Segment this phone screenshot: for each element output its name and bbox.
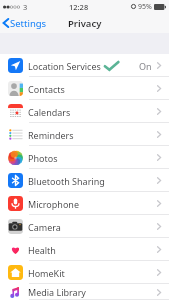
staticText: Reminders bbox=[28, 129, 74, 141]
button[interactable]: Calendars bbox=[0, 100, 169, 123]
staticText: On bbox=[139, 60, 152, 72]
staticText: Media Library bbox=[28, 286, 86, 298]
button[interactable]: Settings bbox=[0, 13, 169, 33]
staticText: 95% bbox=[138, 2, 152, 12]
button[interactable]: Health bbox=[0, 238, 169, 261]
staticText: Privacy bbox=[68, 17, 102, 30]
button[interactable]: Photos bbox=[0, 146, 169, 169]
staticText: Calendars bbox=[28, 106, 71, 118]
staticText: Health bbox=[28, 244, 56, 256]
staticText: HomeKit bbox=[28, 267, 65, 279]
button[interactable]: HomeKit bbox=[0, 261, 169, 284]
button[interactable]: Microphone bbox=[0, 192, 169, 215]
staticText: Location Services bbox=[28, 60, 101, 72]
staticText: Camera bbox=[28, 221, 61, 233]
button[interactable]: Location Services bbox=[0, 54, 169, 77]
button[interactable]: Reminders bbox=[0, 123, 169, 146]
staticText: 12:28 bbox=[69, 2, 89, 12]
button[interactable]: Bluetooth Sharing bbox=[0, 169, 169, 192]
staticText: Bluetooth Sharing bbox=[28, 175, 105, 187]
staticText: Contacts bbox=[28, 83, 65, 95]
staticText: Settings bbox=[10, 17, 47, 30]
button[interactable]: Camera bbox=[0, 215, 169, 238]
staticText: 3 bbox=[23, 2, 28, 12]
staticText: Microphone bbox=[28, 198, 79, 210]
staticText: Photos bbox=[28, 152, 58, 164]
button[interactable]: Media Library bbox=[0, 284, 169, 300]
button[interactable]: Contacts bbox=[0, 77, 169, 100]
